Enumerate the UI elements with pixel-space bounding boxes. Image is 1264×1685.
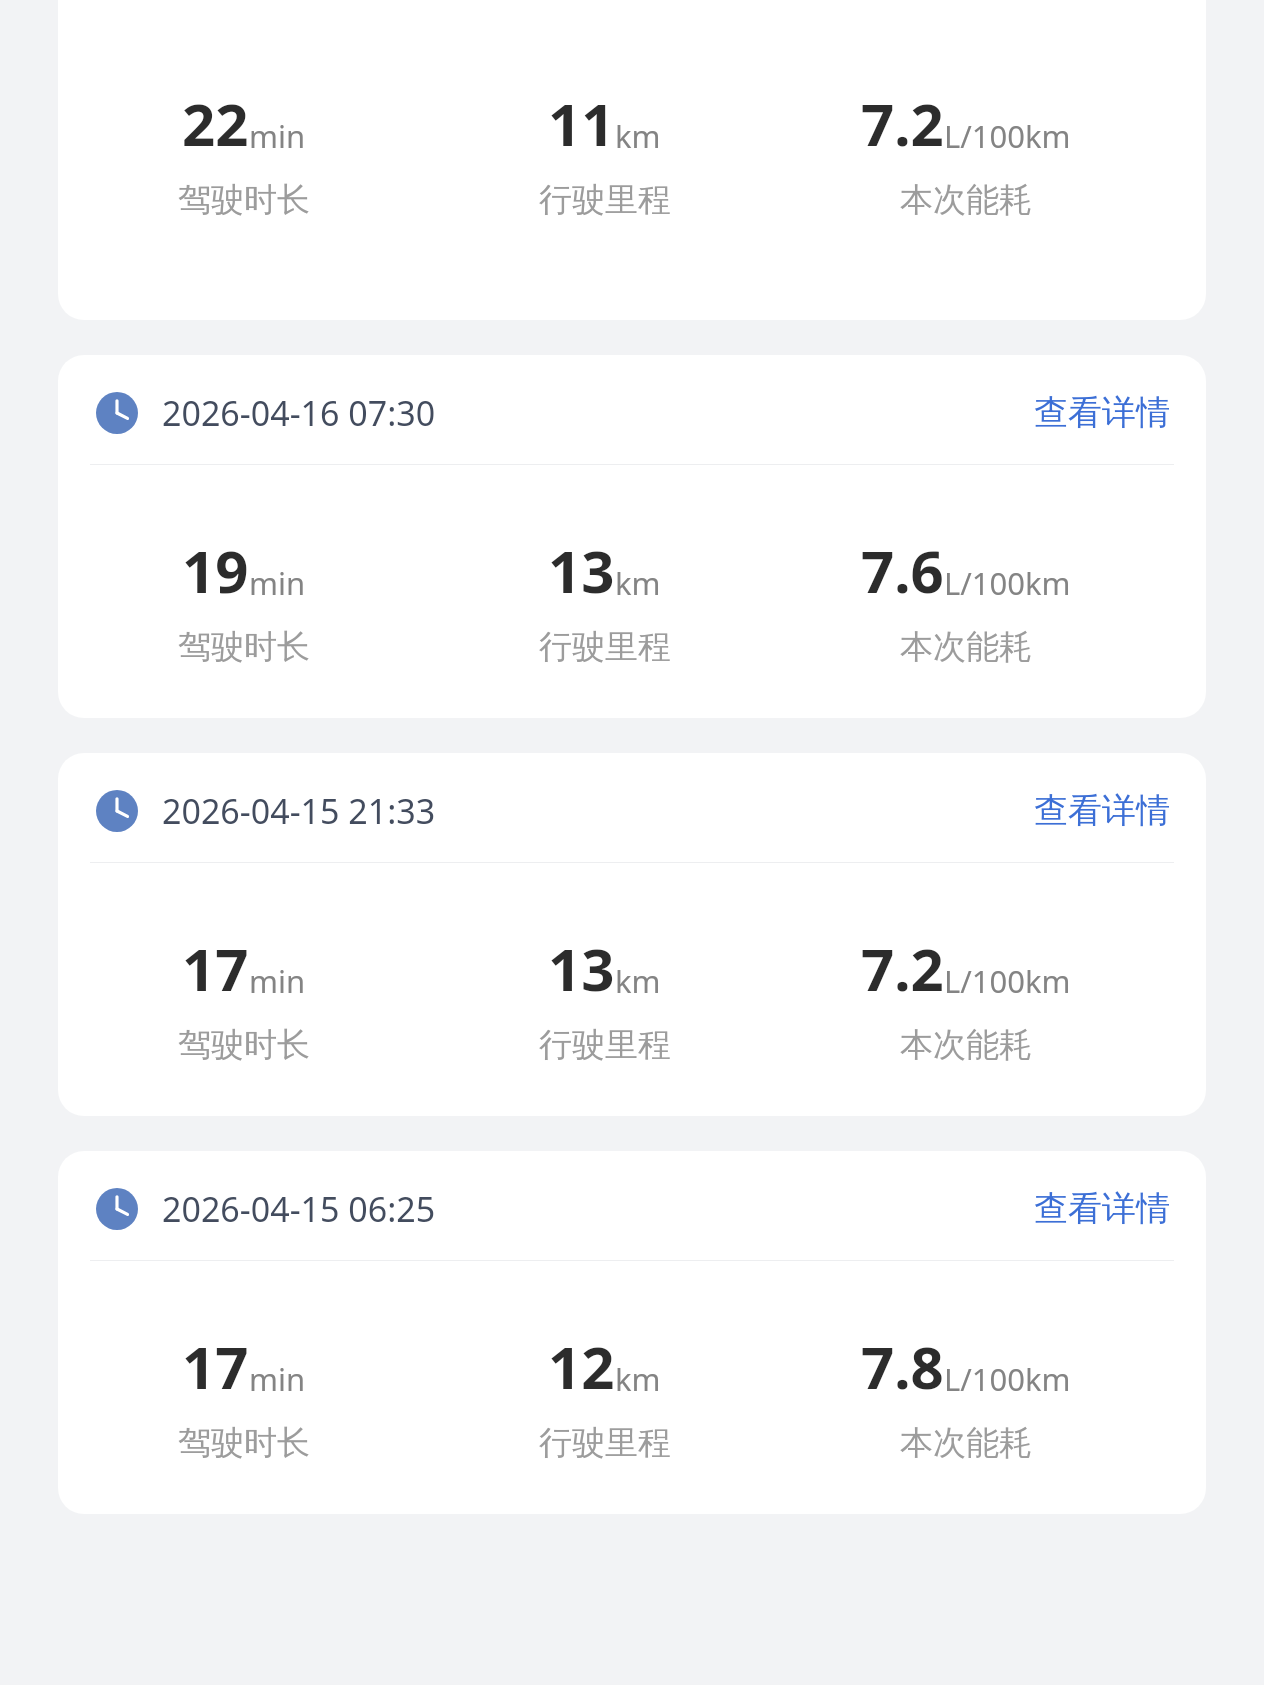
button[interactable]: Trip time <box>58 355 1206 718</box>
staticText: 行驶里程 <box>539 179 671 221</box>
staticText: 7.6 <box>861 531 944 610</box>
staticText: 本次能耗 <box>900 1024 1032 1066</box>
staticText: min <box>249 1358 306 1400</box>
button[interactable]: 查看详情 <box>1028 1179 1176 1238</box>
staticText: min <box>249 115 306 157</box>
staticText: 17 <box>182 1327 249 1406</box>
staticText: km <box>615 562 661 604</box>
staticText: 7.8 <box>861 1327 944 1406</box>
button[interactable]: 查看详情 <box>1028 781 1176 840</box>
staticText: 7.2 <box>861 84 944 163</box>
staticText: 行驶里程 <box>539 626 671 668</box>
staticText: 11 <box>548 84 615 163</box>
staticText: 12 <box>548 1327 615 1406</box>
staticText: 2026-04-15 06:25 <box>162 1186 436 1232</box>
staticText: 22 <box>182 84 249 163</box>
button[interactable]: 查看详情 <box>1028 383 1176 442</box>
staticText: 查看详情 <box>1034 1187 1170 1230</box>
other: Trip time <box>96 1188 138 1230</box>
staticText: 本次能耗 <box>900 626 1032 668</box>
staticText: 13 <box>548 929 615 1008</box>
staticText: 7.2 <box>861 929 944 1008</box>
staticText: 驾驶时长 <box>178 1024 310 1066</box>
staticText: 驾驶时长 <box>178 179 310 221</box>
staticText: 2026-04-16 07:30 <box>162 390 436 436</box>
staticText: 17 <box>182 929 249 1008</box>
staticText: 驾驶时长 <box>178 1422 310 1464</box>
staticText: 驾驶时长 <box>178 626 310 668</box>
staticText: 查看详情 <box>1034 391 1170 434</box>
staticText: 本次能耗 <box>900 179 1032 221</box>
staticText: L/100km <box>944 115 1071 157</box>
staticText: km <box>615 115 661 157</box>
staticText: km <box>615 1358 661 1400</box>
other: Trip time <box>96 790 138 832</box>
button[interactable]: Trip time <box>58 1151 1206 1514</box>
staticText: 行驶里程 <box>539 1422 671 1464</box>
staticText: 13 <box>548 531 615 610</box>
staticText: km <box>615 960 661 1002</box>
staticText: 19 <box>182 531 249 610</box>
staticText: 查看详情 <box>1034 789 1170 832</box>
button[interactable]: 22 <box>58 0 1206 320</box>
button[interactable]: Trip time <box>58 753 1206 1116</box>
staticText: min <box>249 562 306 604</box>
staticText: L/100km <box>944 1358 1071 1400</box>
staticText: 本次能耗 <box>900 1422 1032 1464</box>
staticText: 2026-04-15 21:33 <box>162 788 436 834</box>
staticText: 行驶里程 <box>539 1024 671 1066</box>
staticText: min <box>249 960 306 1002</box>
staticText: L/100km <box>944 960 1071 1002</box>
other: Trip time <box>96 392 138 434</box>
staticText: L/100km <box>944 562 1071 604</box>
